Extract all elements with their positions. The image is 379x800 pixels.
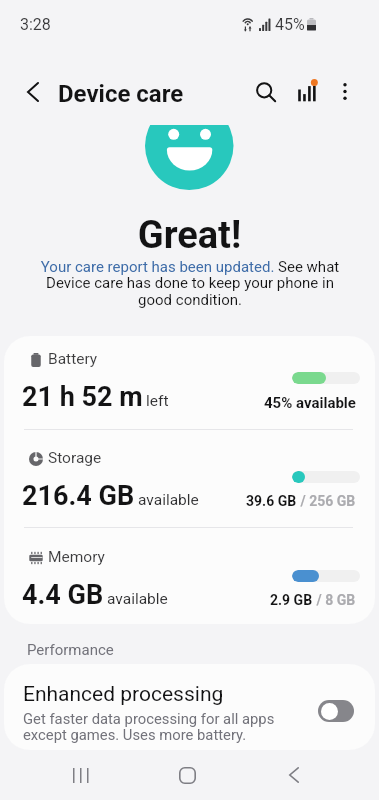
staticText: 216.4 GB: [22, 480, 135, 512]
button[interactable]: Enhanced processing: [318, 700, 354, 722]
staticText: 45%: [275, 15, 305, 34]
staticText: / 256 GB: [297, 493, 356, 509]
button[interactable]: Back: [270, 751, 318, 799]
staticText: available: [107, 590, 168, 608]
staticText: Memory: [48, 548, 105, 566]
staticText: Your care report has been updated. See w…: [34, 258, 346, 309]
staticText: 3:28: [20, 15, 51, 34]
staticText: left: [146, 392, 169, 410]
button[interactable]: Enhanced processing: [4, 664, 375, 750]
button[interactable]: Recent apps: [57, 751, 105, 799]
staticText: available: [138, 491, 199, 509]
staticText: Enhanced processing: [23, 682, 224, 707]
staticText: Battery: [48, 350, 98, 368]
button[interactable]: Home: [163, 751, 211, 799]
button[interactable]: Search: [243, 71, 284, 112]
button[interactable]: Storage: [4, 435, 375, 528]
button[interactable]: More options: [325, 71, 366, 112]
staticText: Storage: [48, 449, 102, 467]
staticText: Performance: [27, 641, 114, 659]
staticText: / 8 GB: [313, 592, 356, 608]
button[interactable]: Care report: [288, 71, 329, 112]
staticText: Great!: [0, 213, 379, 258]
staticText: Get faster data processing for all apps …: [23, 710, 293, 744]
staticText: 21 h 52 m: [22, 381, 143, 413]
staticText: 2.9 GB: [270, 592, 313, 608]
button[interactable]: Memory: [4, 534, 375, 624]
staticText: 45% available: [264, 394, 356, 412]
button[interactable]: Battery: [4, 336, 375, 429]
staticText: Device care: [58, 80, 184, 108]
staticText: 39.6 GB: [246, 493, 297, 509]
button[interactable]: Navigate up: [12, 71, 53, 112]
staticText: 4.4 GB: [22, 579, 104, 611]
